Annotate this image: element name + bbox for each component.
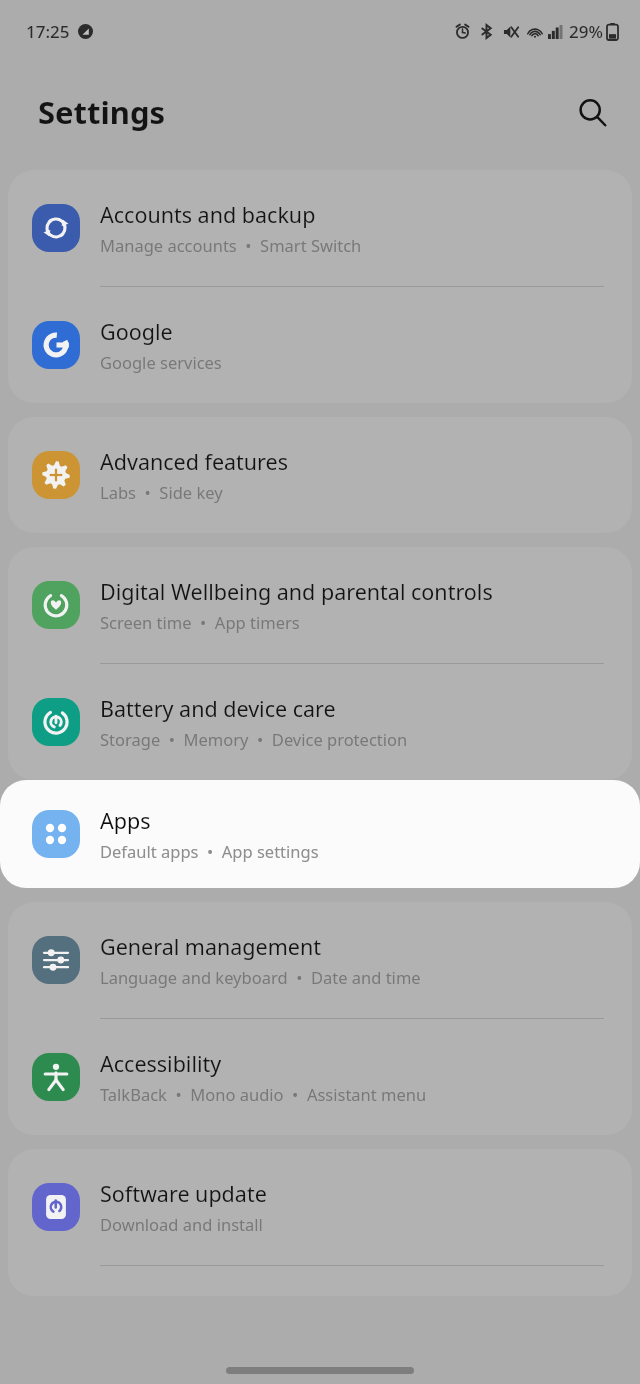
staticText: Google: [100, 317, 173, 346]
button[interactable]: Accounts and backup: [8, 170, 632, 286]
staticText: Manage accounts • Smart Switch: [100, 234, 362, 256]
button[interactable]: Advanced features: [8, 417, 632, 533]
button[interactable]: Accessibility: [8, 1019, 632, 1135]
button[interactable]: Digital Wellbeing and parental controls: [8, 547, 632, 663]
staticText: Storage • Memory • Device protection: [100, 728, 408, 750]
staticText: Apps: [100, 806, 151, 835]
staticText: Default apps • App settings: [100, 840, 319, 862]
button[interactable]: Google: [8, 287, 632, 403]
button[interactable]: Battery and device care: [8, 664, 632, 780]
staticText: General management: [100, 932, 321, 961]
staticText: Advanced features: [100, 447, 288, 476]
staticText: TalkBack • Mono audio • Assistant menu: [100, 1083, 427, 1105]
staticText: Google services: [100, 351, 222, 373]
staticText: Digital Wellbeing and parental controls: [100, 577, 493, 606]
staticText: Language and keyboard • Date and time: [100, 966, 421, 988]
staticText: Labs • Side key: [100, 481, 223, 503]
button[interactable]: Apps: [0, 780, 640, 888]
staticText: Download and install: [100, 1213, 263, 1235]
staticText: Screen time • App timers: [100, 611, 300, 633]
staticText: Accounts and backup: [100, 200, 316, 229]
button[interactable]: Search settings: [566, 86, 618, 138]
staticText: 17:25: [26, 20, 70, 43]
staticText: 29%: [569, 20, 603, 43]
staticText: Accessibility: [100, 1049, 222, 1078]
button[interactable]: General management: [8, 902, 632, 1018]
button[interactable]: Software update: [8, 1149, 632, 1265]
staticText: Software update: [100, 1179, 267, 1208]
staticText: Settings: [38, 91, 166, 133]
staticText: Battery and device care: [100, 694, 336, 723]
